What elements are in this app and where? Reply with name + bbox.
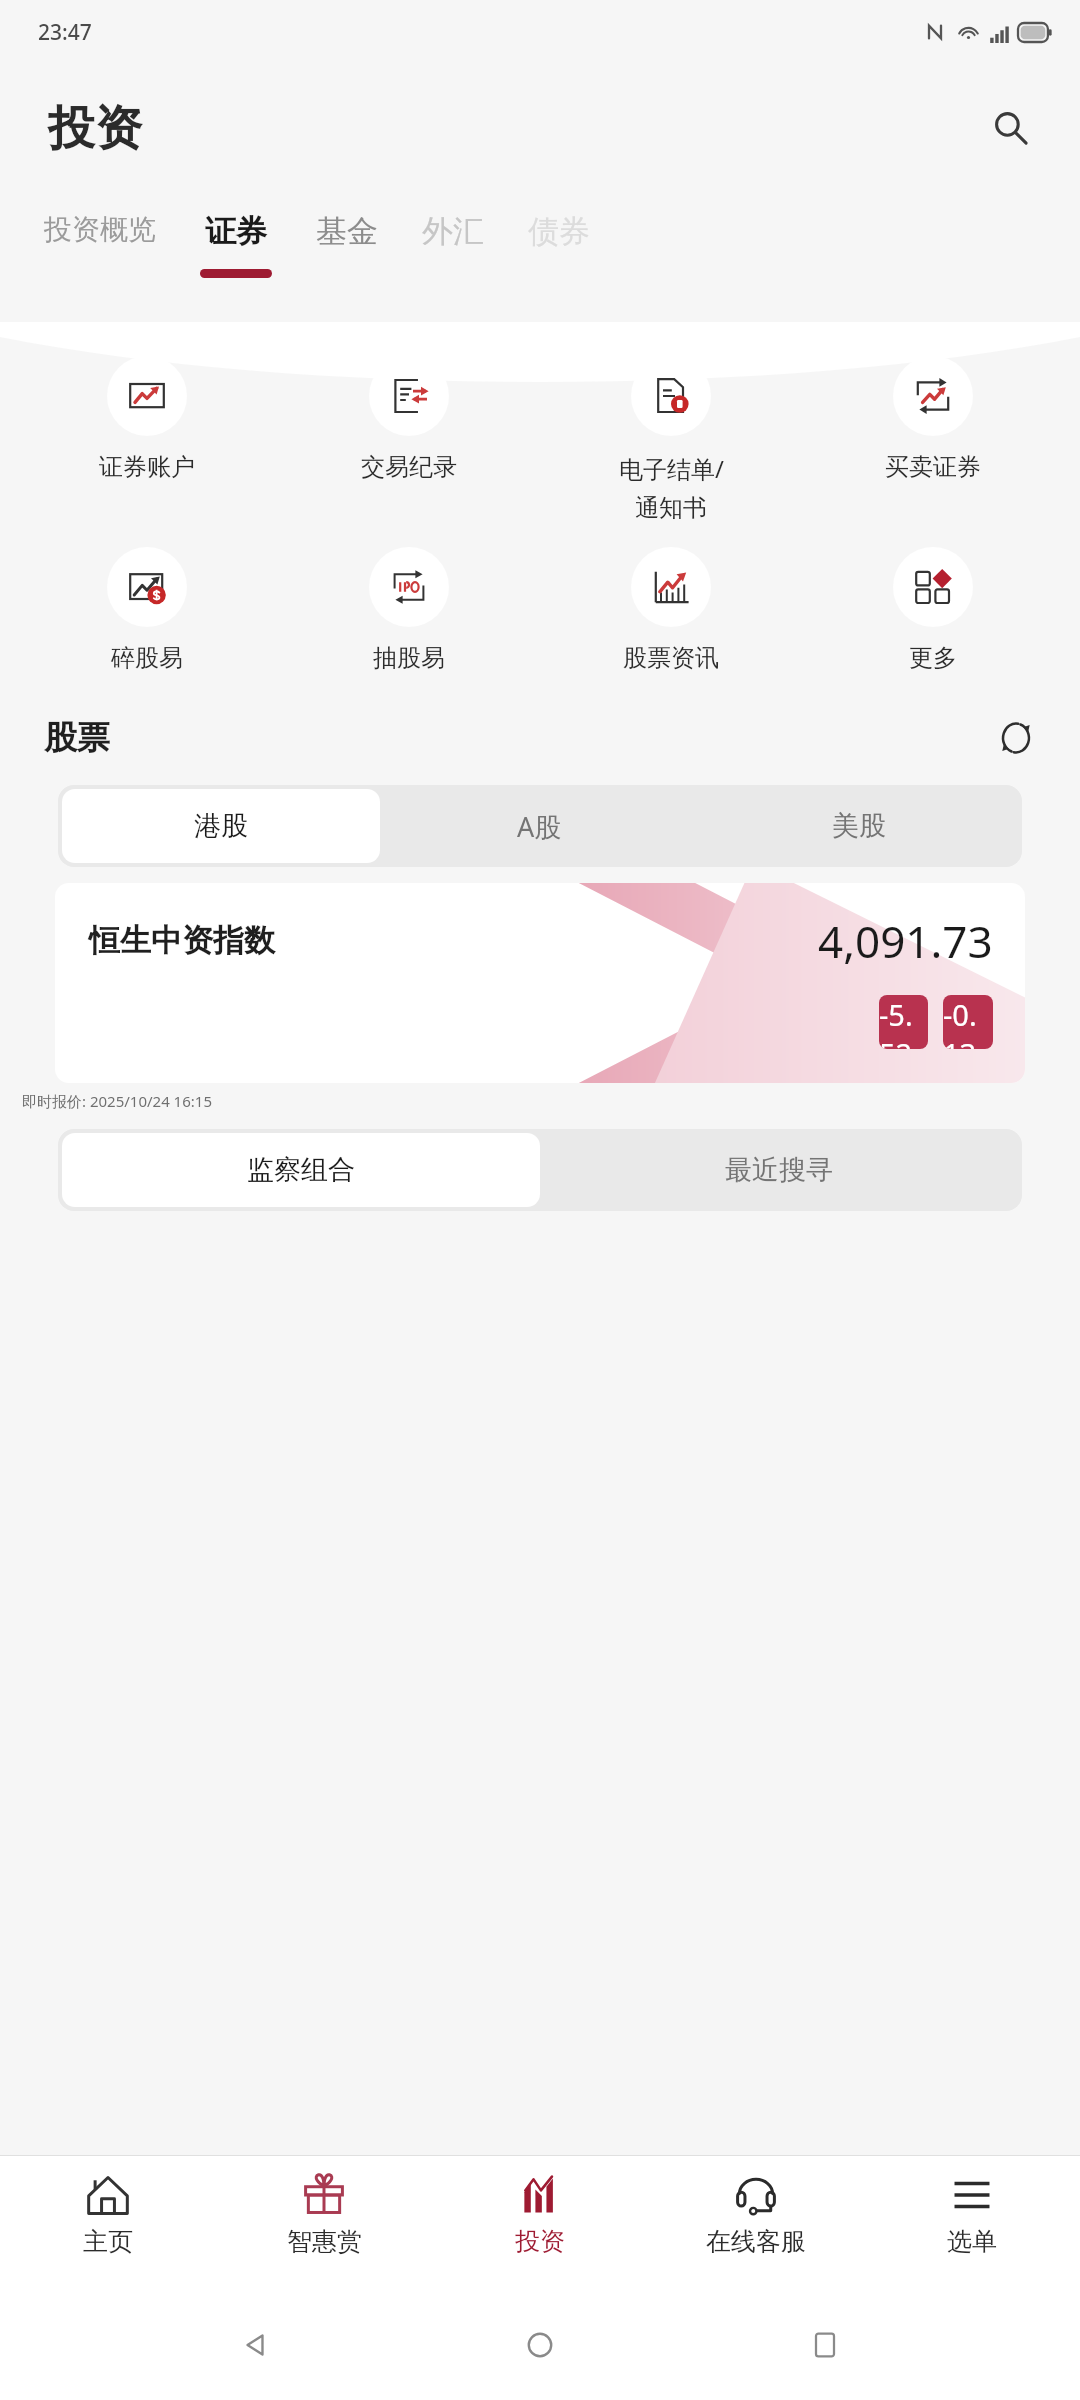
staticText: 碎股易 xyxy=(111,643,183,673)
staticText: 在线客服 xyxy=(706,2226,806,2257)
staticText: 通知书 xyxy=(635,493,707,523)
button[interactable]: 监察组合 xyxy=(62,1133,540,1207)
staticText: 买卖证券 xyxy=(885,452,981,482)
staticText: 证券 xyxy=(205,212,267,251)
other: Home xyxy=(510,2315,570,2375)
staticText: 港股 xyxy=(194,809,248,843)
button[interactable]: 基金 xyxy=(316,192,378,269)
button[interactable]: 证券账户 xyxy=(16,352,278,486)
button[interactable]: A股 xyxy=(380,789,699,863)
other: Back xyxy=(225,2315,285,2375)
staticText: A股 xyxy=(517,808,562,845)
button[interactable]: Refresh xyxy=(988,710,1044,766)
button[interactable]: 证券 xyxy=(200,192,272,278)
staticText: 监察组合 xyxy=(247,1153,355,1187)
button[interactable]: 电子结单/ xyxy=(540,352,802,527)
button[interactable]: 更多 xyxy=(802,543,1064,677)
button[interactable]: Search xyxy=(980,97,1042,159)
staticText: 美股 xyxy=(832,809,886,843)
staticText: 股票 xyxy=(44,717,110,759)
button[interactable]: 恒生中资指数 xyxy=(55,883,1025,1083)
staticText: 智惠赏 xyxy=(287,2226,362,2257)
staticText: 即时报价: 2025/10/24 16:15 xyxy=(22,1091,212,1111)
button[interactable]: 碎股易 xyxy=(16,543,278,677)
button[interactable]: 外汇 xyxy=(422,192,484,269)
staticText: 外汇 xyxy=(422,212,484,251)
staticText: 投资概览 xyxy=(44,212,156,247)
staticText: 最近搜寻 xyxy=(725,1153,833,1187)
button[interactable]: 交易纪录 xyxy=(278,352,540,486)
button[interactable]: 主页 xyxy=(0,2156,216,2290)
staticText: 基金 xyxy=(316,212,378,251)
button[interactable]: 选单 xyxy=(864,2156,1080,2290)
staticText: 债券 xyxy=(528,212,590,251)
staticText: 抽股易 xyxy=(373,643,445,673)
staticText: -5.52 xyxy=(879,995,928,1049)
staticText: 投资 xyxy=(515,2226,565,2257)
button[interactable]: 债券 xyxy=(528,192,590,269)
button[interactable]: 最近搜寻 xyxy=(540,1133,1018,1207)
staticText: 投资 xyxy=(48,99,142,158)
staticText: -0.13% xyxy=(943,995,993,1049)
button[interactable]: 买卖证券 xyxy=(802,352,1064,486)
staticText: 更多 xyxy=(909,643,957,673)
staticText: 电子结单/ xyxy=(619,452,724,485)
button[interactable]: 美股 xyxy=(699,789,1018,863)
button[interactable]: 股票资讯 xyxy=(540,543,802,677)
button[interactable]: 抽股易 xyxy=(278,543,540,677)
staticText: 选单 xyxy=(947,2226,997,2257)
staticText: 主页 xyxy=(83,2226,133,2257)
button[interactable]: 投资 xyxy=(432,2156,648,2290)
other: Recents xyxy=(795,2315,855,2375)
staticText: 4,091.73 xyxy=(818,911,993,971)
staticText: 恒生中资指数 xyxy=(89,921,275,960)
button[interactable]: 港股 xyxy=(62,789,380,863)
button[interactable]: 在线客服 xyxy=(648,2156,864,2290)
staticText: 股票资讯 xyxy=(623,643,719,673)
staticText: 23:47 xyxy=(38,18,92,47)
button[interactable]: 投资概览 xyxy=(44,192,156,265)
staticText: 证券账户 xyxy=(99,452,195,482)
button[interactable]: 智惠赏 xyxy=(216,2156,432,2290)
staticText: 交易纪录 xyxy=(361,452,457,482)
